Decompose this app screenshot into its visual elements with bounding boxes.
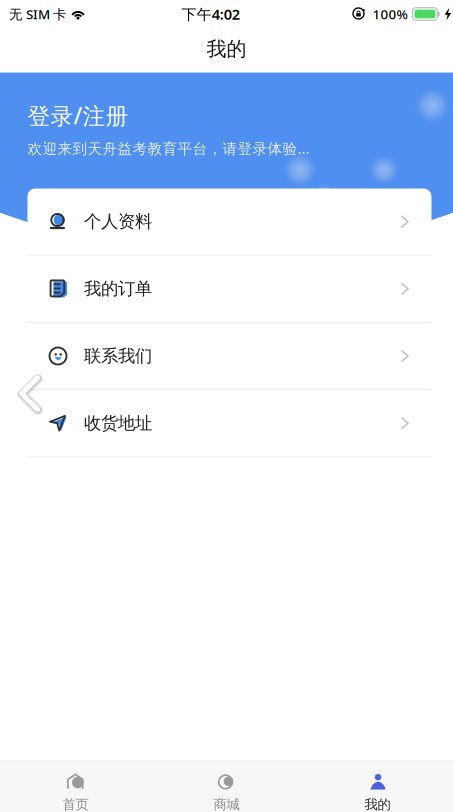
staticText: 商城: [213, 796, 239, 812]
button[interactable]: 联系我们: [27, 323, 431, 389]
staticText: 个人资料: [84, 211, 152, 232]
button[interactable]: 我的订单: [27, 256, 431, 322]
staticText: 我的: [364, 796, 390, 812]
button[interactable]: 我的: [0, 27, 453, 71]
button[interactable]: 收货地址: [27, 390, 431, 456]
staticText: 下午4:02: [182, 4, 240, 24]
button[interactable]: 商城: [151, 761, 302, 812]
button[interactable]: 首页: [0, 761, 151, 812]
staticText: 无 SIM 卡: [9, 5, 66, 23]
staticText: 联系我们: [84, 345, 152, 367]
staticText: 登录/注册: [27, 100, 128, 131]
staticText: 100%: [372, 5, 407, 23]
staticText: 我的: [206, 37, 246, 61]
button[interactable]: 个人资料: [27, 188, 431, 255]
staticText: 首页: [62, 796, 88, 812]
button[interactable]: 我的: [302, 761, 453, 812]
staticText: 收货地址: [84, 413, 152, 434]
staticText: 我的订单: [84, 278, 152, 299]
staticText: 欢迎来到天舟益考教育平台，请登录体验...: [27, 139, 309, 158]
